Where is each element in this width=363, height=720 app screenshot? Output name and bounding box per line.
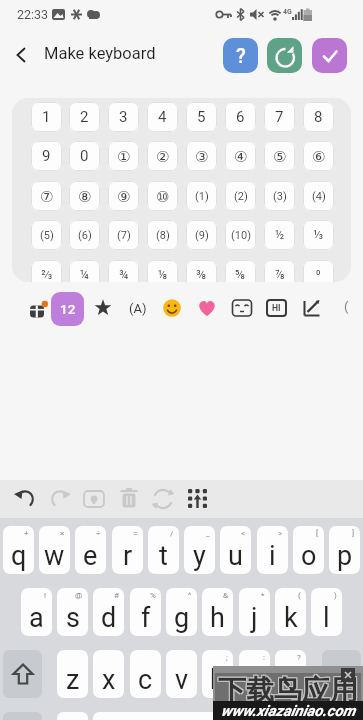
button[interactable] [82, 487, 106, 511]
button[interactable]: w [39, 526, 70, 574]
button[interactable] [151, 487, 176, 511]
button[interactable] [161, 297, 183, 319]
button[interactable]: ⑦ [31, 181, 62, 211]
button[interactable] [312, 38, 347, 73]
button[interactable]: (1) [186, 181, 217, 211]
button[interactable]: h [202, 588, 233, 636]
button[interactable]: (9) [186, 220, 217, 250]
button[interactable]: v [166, 650, 197, 698]
button[interactable]: ⑨ [108, 181, 139, 211]
button[interactable] [3, 712, 42, 720]
button[interactable]: ⅝ [225, 260, 256, 282]
staticText: ⑨ [117, 188, 131, 205]
button[interactable]: 2 [69, 102, 100, 132]
button[interactable] [4, 41, 40, 71]
button[interactable]: (10) [225, 220, 256, 250]
button[interactable]: a [21, 588, 52, 636]
button[interactable] [24, 296, 50, 322]
staticText: 7 [275, 108, 284, 126]
button[interactable]: (5) [31, 220, 62, 250]
button[interactable]: y [184, 526, 215, 574]
button[interactable]: ⑥ [303, 141, 334, 171]
button[interactable]: (7) [108, 220, 139, 250]
button[interactable] [275, 712, 306, 720]
button[interactable]: r [112, 526, 143, 574]
button[interactable]: ⁰ [303, 260, 334, 282]
button[interactable]: e [75, 526, 106, 574]
button[interactable]: g [166, 588, 197, 636]
button[interactable]: s [57, 588, 88, 636]
button[interactable]: i [257, 526, 288, 574]
button[interactable]: 4 [147, 102, 178, 132]
button[interactable]: n [239, 650, 270, 698]
button[interactable]: m [275, 650, 306, 698]
button[interactable]: q [3, 526, 34, 574]
button[interactable]: (2) [225, 181, 256, 211]
button[interactable]: ⑧ [69, 181, 100, 211]
button[interactable]: j [239, 588, 270, 636]
button[interactable]: HI [266, 299, 287, 317]
button[interactable]: o [293, 526, 324, 574]
staticText: ^ [188, 591, 192, 600]
button[interactable]: 12 [51, 292, 84, 326]
button[interactable] [322, 650, 361, 698]
button[interactable]: t [148, 526, 179, 574]
staticText: + [24, 529, 29, 538]
button[interactable]: ⅜ [186, 260, 217, 282]
button[interactable]: 9 [31, 141, 62, 171]
button[interactable]: 8 [303, 102, 334, 132]
button[interactable]: p [329, 526, 360, 574]
button[interactable] [231, 297, 253, 319]
button[interactable]: f [130, 588, 161, 636]
button[interactable]: ½ [264, 220, 295, 250]
button[interactable]: (6) [69, 220, 100, 250]
button[interactable]: (4) [303, 181, 334, 211]
button[interactable]: ⅓ [303, 220, 334, 250]
button[interactable] [267, 38, 302, 73]
staticText: p [337, 540, 353, 572]
button[interactable] [322, 712, 361, 720]
button[interactable]: u [220, 526, 251, 574]
staticText: ? [236, 44, 246, 67]
button[interactable] [186, 487, 211, 511]
button[interactable]: ④ [225, 141, 256, 171]
button[interactable] [3, 650, 42, 698]
button[interactable]: 7 [264, 102, 295, 132]
button[interactable] [118, 487, 140, 511]
button[interactable]: (3) [264, 181, 295, 211]
button[interactable]: (8) [147, 220, 178, 250]
button[interactable]: ⑤ [264, 141, 295, 171]
staticText: 2 [80, 108, 89, 126]
button[interactable]: l [311, 588, 342, 636]
button[interactable]: ⅛ [147, 260, 178, 282]
button[interactable]: ⅔ [31, 260, 62, 282]
button[interactable]: ① [108, 141, 139, 171]
button[interactable]: 6 [225, 102, 256, 132]
button[interactable] [45, 486, 73, 512]
button[interactable]: ¼ [69, 260, 100, 282]
button[interactable]: ③ [186, 141, 217, 171]
staticText: ⅜ [196, 268, 207, 282]
button[interactable] [12, 486, 40, 512]
button[interactable]: ¾ [108, 260, 139, 282]
button[interactable]: 0 [69, 141, 100, 171]
button[interactable]: c [130, 650, 161, 698]
button[interactable]: (A) [126, 296, 150, 320]
button[interactable]: d [93, 588, 124, 636]
button[interactable]: x [93, 650, 124, 698]
button[interactable]: z [57, 650, 88, 698]
button[interactable]: 1 [31, 102, 62, 132]
button[interactable] [93, 712, 269, 720]
button[interactable]: ? [223, 38, 258, 73]
button[interactable] [57, 712, 88, 720]
button[interactable] [92, 297, 114, 319]
button[interactable] [196, 297, 218, 319]
button[interactable] [301, 297, 323, 319]
button[interactable]: ⅞ [264, 260, 295, 282]
button[interactable]: b [202, 650, 233, 698]
button[interactable]: ⑩ [147, 181, 178, 211]
button[interactable]: ② [147, 141, 178, 171]
button[interactable]: k [275, 588, 306, 636]
button[interactable]: 5 [186, 102, 217, 132]
button[interactable]: 3 [108, 102, 139, 132]
